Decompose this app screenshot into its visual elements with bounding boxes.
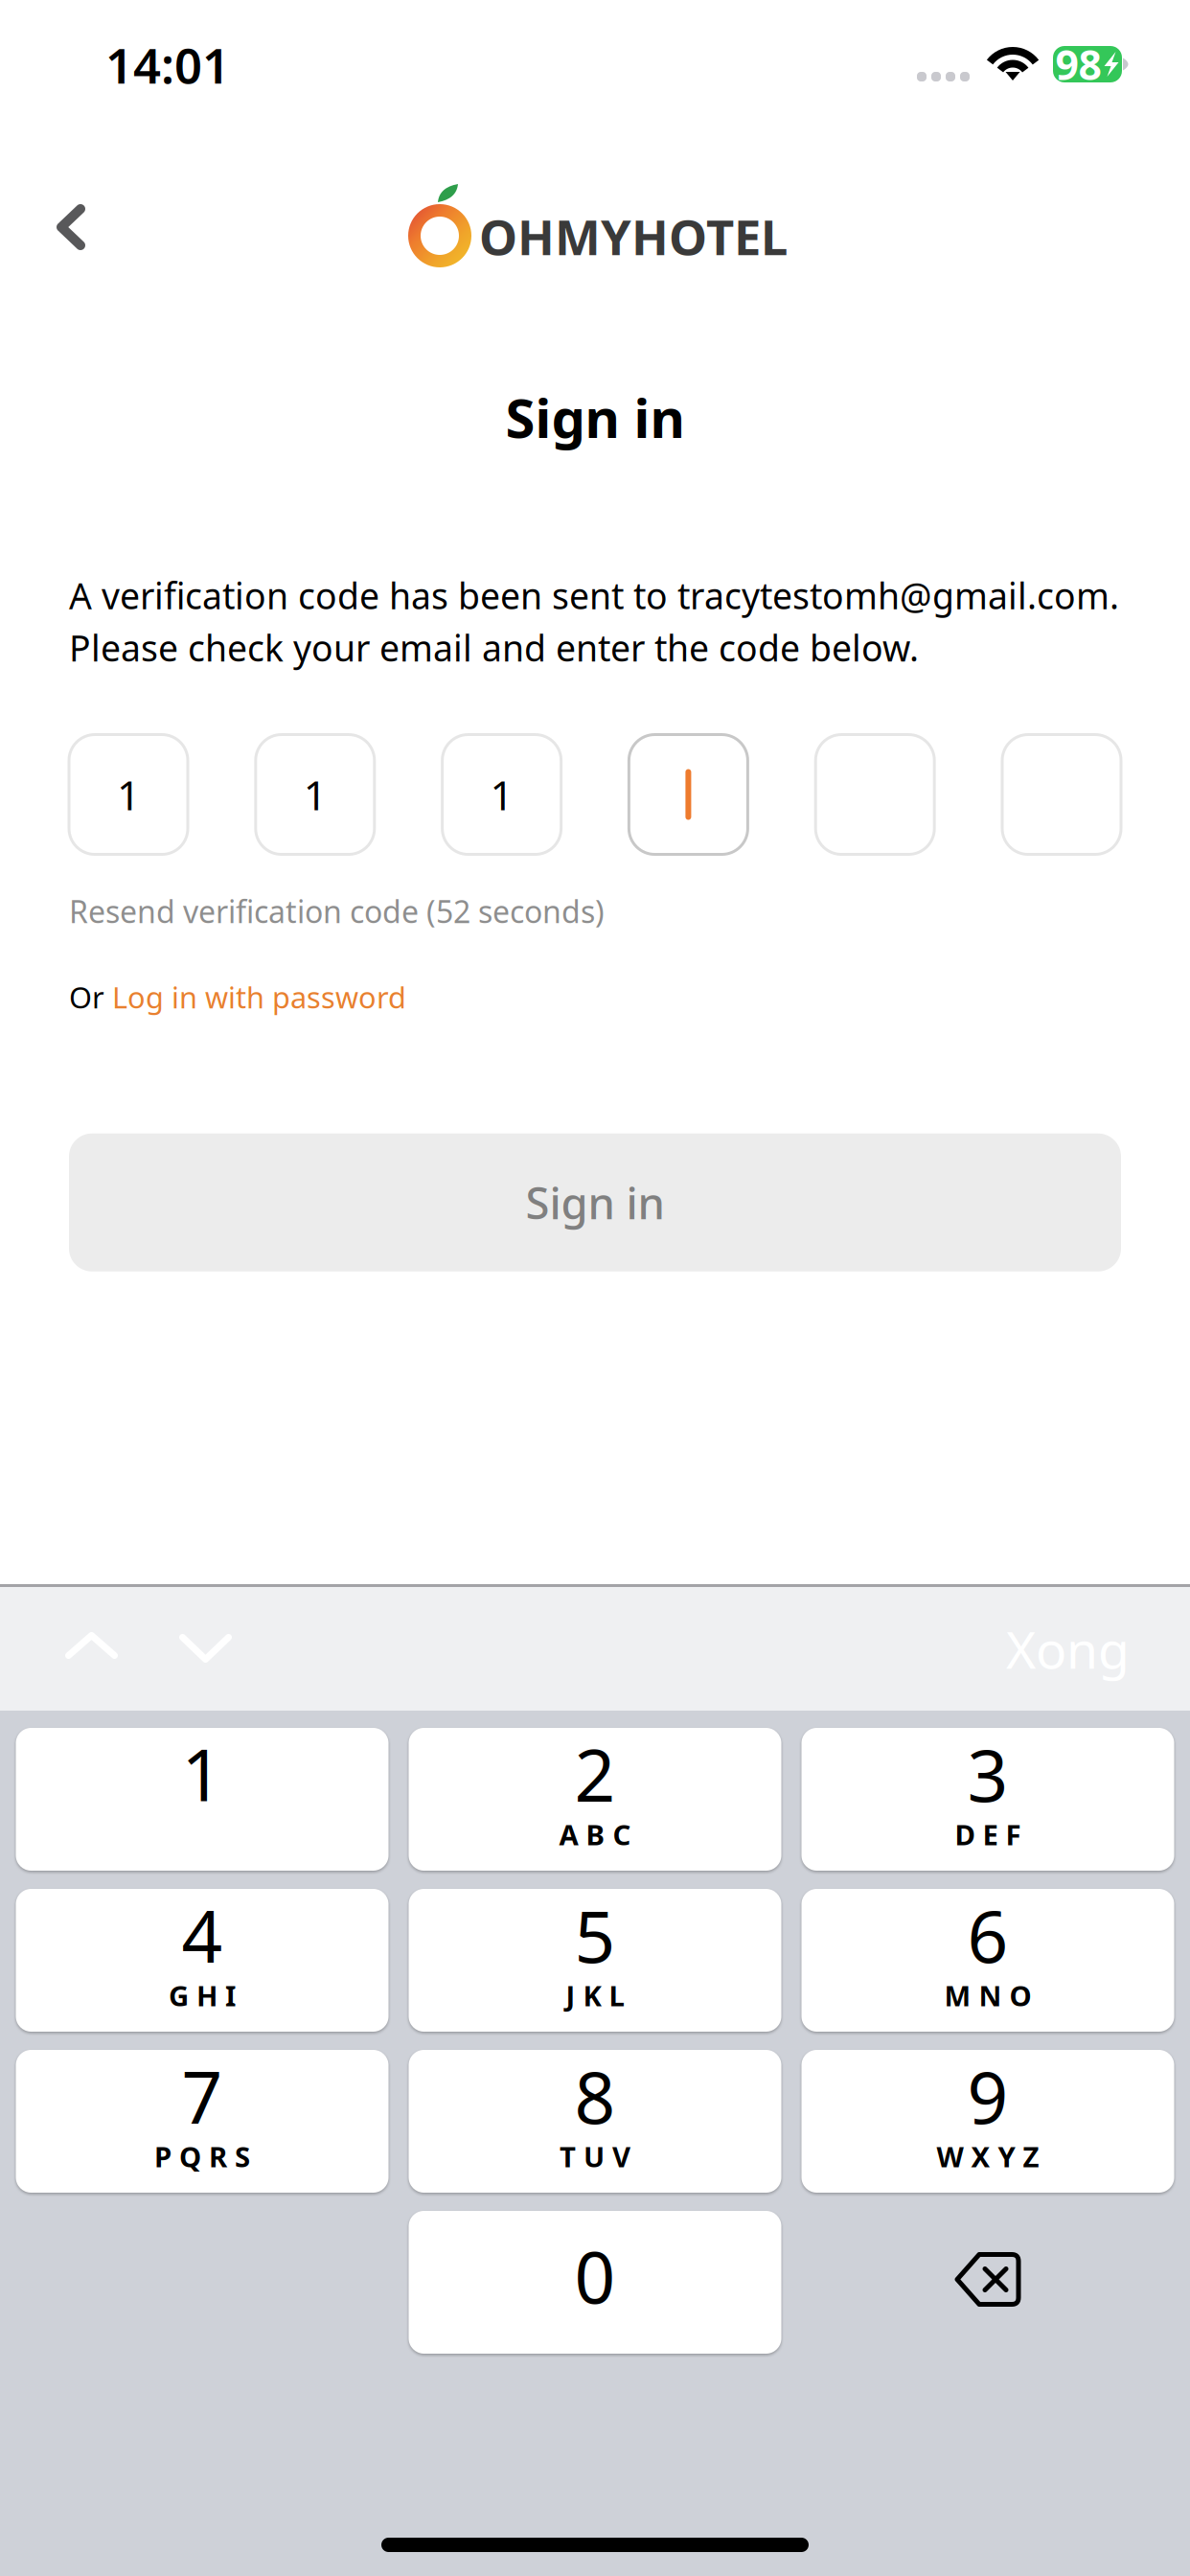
staticText: 7 [182,2048,223,2143]
button[interactable]: Log in with password [112,977,406,1017]
staticText: Or [69,977,112,1017]
button[interactable]: 4 [16,1889,389,2032]
button[interactable]: 7 [16,2050,389,2193]
staticText: 4 [182,1887,223,1982]
staticText: 2 [574,1726,616,1821]
button[interactable]: 6 [801,1889,1174,2032]
staticText: OHMYHOTEL [479,204,788,269]
staticText: 1 [182,1726,223,1821]
staticText: Sign in [526,1174,664,1231]
staticText: T U V [560,2138,630,2175]
button[interactable]: 9 [801,2050,1174,2193]
staticText: 5 [574,1887,616,1982]
button[interactable]: Delete [801,2211,1174,2354]
button[interactable]: 8 [409,2050,781,2193]
button[interactable]: 0 [409,2211,781,2354]
staticText: A B C [559,1816,631,1853]
button[interactable]: Next field [179,1587,270,1711]
button[interactable]: 5 [409,1889,781,2032]
staticText: J K L [566,1977,624,2014]
staticText: 1 [304,767,327,822]
staticText: Xong [1006,1615,1130,1683]
staticText: A verification code has been sent to tra… [69,572,1119,671]
staticText: 14:01 [105,33,230,97]
staticText: 8 [574,2048,616,2143]
staticText: 3 [967,1726,1008,1821]
button[interactable]: 2 [409,1728,781,1871]
staticText: G H I [169,1977,236,2014]
staticText: Log in with password [112,977,406,1017]
button[interactable]: Sign in [69,1133,1121,1271]
button[interactable]: 1 [16,1728,389,1871]
staticText: P Q R S [154,2138,250,2175]
staticText: Resend verification code (52 seconds) [69,891,605,931]
button[interactable]: 3 [801,1728,1174,1871]
staticText: W X Y Z [937,2138,1039,2175]
staticText: D E F [955,1816,1021,1853]
button[interactable]: Back [0,115,125,274]
staticText: 1 [117,767,140,822]
button[interactable]: Xong [991,1598,1145,1700]
staticText: 9 [967,2048,1008,2143]
staticText: M N O [944,1977,1031,2014]
staticText: Sign in [505,381,685,453]
staticText: 98 [1055,37,1101,91]
staticText: 0 [574,2228,616,2323]
staticText: 6 [967,1887,1008,1982]
staticText: 1 [490,767,513,822]
